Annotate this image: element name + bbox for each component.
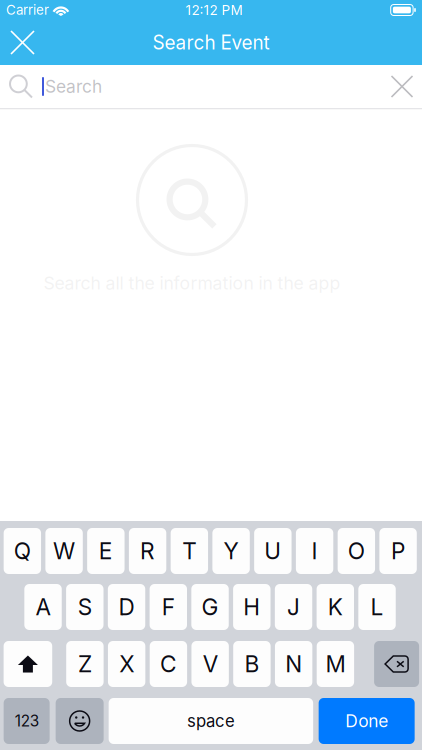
staticText: B [244, 650, 259, 678]
staticText: Carrier [6, 2, 49, 18]
staticText: U [264, 537, 281, 565]
button[interactable]: E [87, 528, 125, 574]
button[interactable]: Y [212, 528, 250, 574]
button[interactable]: K [317, 584, 354, 630]
staticText: T [182, 537, 196, 565]
button[interactable]: L [358, 584, 396, 630]
staticText: J [287, 593, 300, 621]
button[interactable]: A [24, 584, 62, 630]
staticText: I [312, 537, 318, 565]
staticText: space [187, 711, 235, 731]
button[interactable]: Q [4, 528, 41, 574]
staticText: 12:12 PM [185, 2, 242, 18]
button[interactable]: Done [319, 698, 415, 744]
button[interactable]: Close [0, 20, 45, 65]
staticText: Y [224, 537, 239, 565]
button[interactable]: I [296, 528, 333, 574]
button[interactable]: O [338, 528, 375, 574]
button[interactable]: space [109, 698, 313, 744]
staticText: L [371, 593, 384, 621]
staticText: Search Event [152, 31, 269, 54]
button[interactable]: D [108, 584, 145, 630]
staticText: F [162, 593, 175, 621]
button[interactable]: F [150, 584, 187, 630]
staticText: X [119, 650, 134, 678]
staticText: O [348, 537, 365, 565]
button[interactable]: U [254, 528, 292, 574]
button[interactable]: Z [66, 641, 104, 687]
staticText: Search [45, 76, 102, 97]
staticText: 123 [15, 712, 39, 730]
button[interactable]: Emoji [56, 698, 104, 744]
button[interactable]: R [129, 528, 166, 574]
button[interactable]: Delete [374, 641, 419, 687]
staticText: V [203, 650, 218, 678]
staticText: M [325, 650, 345, 678]
button[interactable]: P [379, 528, 417, 574]
button[interactable]: M [317, 641, 354, 687]
button[interactable]: J [275, 584, 312, 630]
staticText: P [391, 537, 405, 565]
staticText: W [53, 537, 75, 565]
button[interactable]: X [108, 641, 145, 687]
button[interactable]: 123 [4, 698, 50, 744]
staticText: Done [345, 710, 388, 731]
staticText: Search all the information in the app [43, 272, 340, 294]
staticText: G [202, 593, 219, 621]
button[interactable]: C [150, 641, 187, 687]
staticText: E [99, 537, 113, 565]
button[interactable]: V [191, 641, 229, 687]
staticText: C [160, 650, 177, 678]
staticText: S [78, 593, 92, 621]
button[interactable]: Shift [4, 641, 52, 687]
staticText: K [328, 593, 343, 621]
staticText: Q [14, 537, 31, 565]
staticText: Z [78, 650, 92, 678]
staticText: N [285, 650, 302, 678]
button[interactable]: N [275, 641, 312, 687]
button[interactable]: S [66, 584, 103, 630]
button[interactable]: B [233, 641, 271, 687]
button[interactable]: G [191, 584, 229, 630]
button[interactable]: H [233, 584, 270, 630]
staticText: A [36, 593, 51, 621]
staticText: H [243, 593, 260, 621]
button[interactable]: Clear [385, 69, 419, 103]
button[interactable]: W [45, 528, 83, 574]
staticText: R [140, 537, 155, 565]
staticText: D [119, 593, 135, 621]
button[interactable]: T [171, 528, 208, 574]
